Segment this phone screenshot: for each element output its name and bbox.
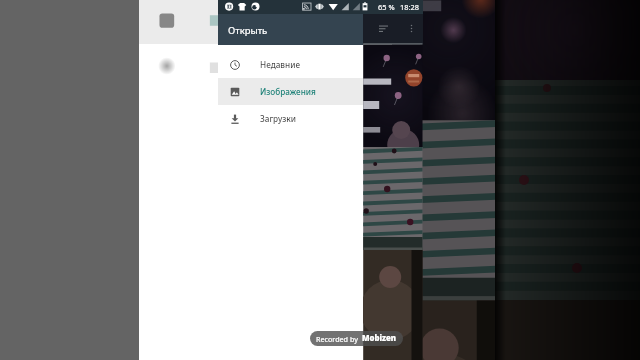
button[interactable]: Загрузки <box>218 105 363 132</box>
button[interactable]: Sort <box>379 23 390 34</box>
staticText: Изображения <box>260 86 316 97</box>
button[interactable]: Недавние <box>218 51 363 78</box>
staticText: 18:28 <box>400 2 419 12</box>
staticText: 65 % <box>378 2 395 12</box>
staticText: Открыть <box>228 24 268 37</box>
staticText: Mobizen <box>362 333 397 344</box>
button[interactable]: More options <box>406 23 417 34</box>
button[interactable]: Изображения <box>218 78 363 105</box>
staticText: Недавние <box>260 59 300 70</box>
staticText: Recorded by <box>316 334 358 344</box>
staticText: Загрузки <box>260 113 297 124</box>
